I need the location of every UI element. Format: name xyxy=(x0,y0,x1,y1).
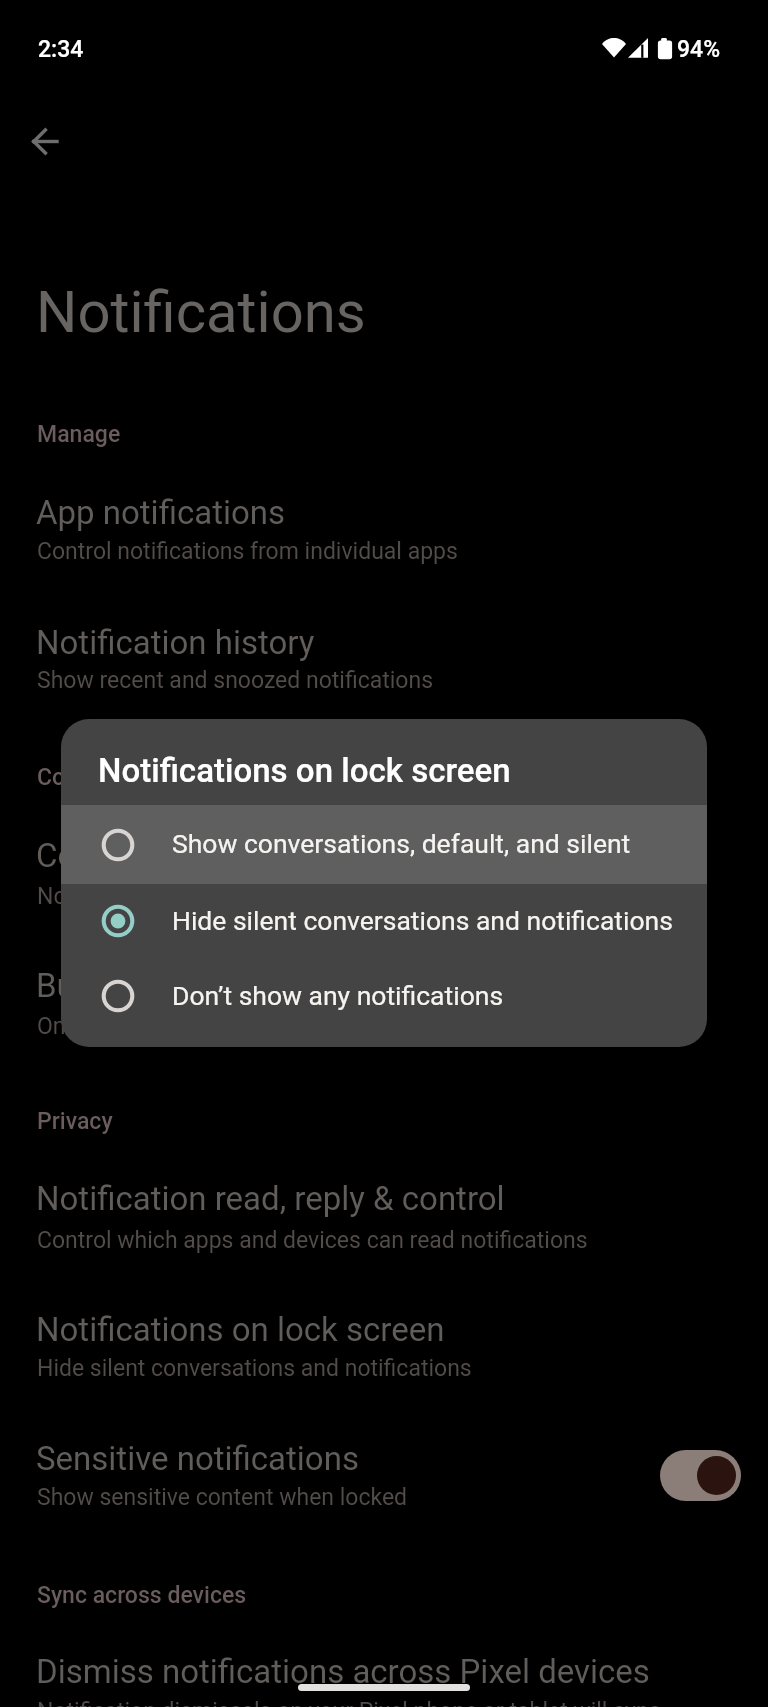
staticText: Conversation settings xyxy=(36,836,356,875)
staticText: Sensitive notifications xyxy=(36,1439,359,1478)
staticText: Dismiss notifications across Pixel devic… xyxy=(36,1652,650,1691)
staticText: Control notifications from individual ap… xyxy=(37,538,458,565)
button[interactable]: Hide silent conversations and notificati… xyxy=(61,884,707,958)
button[interactable]: Sensitive notifications xyxy=(660,1450,741,1501)
staticText: Sync across devices xyxy=(37,1582,247,1609)
staticText: Show sensitive content when locked xyxy=(37,1484,408,1511)
staticText: Privacy xyxy=(37,1108,113,1135)
other: Mobile signal xyxy=(628,38,648,58)
staticText: Hide silent conversations and notificati… xyxy=(172,905,673,936)
other: Wi-Fi xyxy=(602,38,626,58)
button[interactable]: App notifications xyxy=(0,481,768,564)
staticText: App notifications xyxy=(36,493,286,532)
button[interactable]: Notifications on lock screen xyxy=(0,1298,768,1381)
other: Battery xyxy=(657,38,673,60)
button[interactable]: Notification read, reply & control xyxy=(0,1167,768,1252)
button[interactable]: Don’t show any notifications xyxy=(61,958,707,1034)
staticText: Bubbles xyxy=(36,966,155,1005)
staticText: No priority conversations xyxy=(37,883,294,910)
staticText: Notification history xyxy=(36,623,315,662)
staticText: Notification dismissals on your Pixel ph… xyxy=(37,1698,661,1707)
staticText: Notification read, reply & control xyxy=(36,1179,505,1218)
button[interactable]: Show conversations, default, and silent xyxy=(61,805,707,884)
staticText: 94% xyxy=(677,36,721,63)
staticText: Manage xyxy=(37,421,121,448)
button[interactable]: Conversation settings xyxy=(0,824,768,908)
staticText: Notifications on lock screen xyxy=(36,1310,445,1349)
button[interactable]: Back xyxy=(17,113,73,169)
staticText: Control which apps and devices can read … xyxy=(37,1227,588,1254)
staticText: Show recent and snoozed notifications xyxy=(37,667,434,694)
button[interactable]: Notification history xyxy=(0,610,768,692)
button[interactable]: Dismiss notifications across Pixel devic… xyxy=(0,1640,768,1707)
staticText: On xyxy=(37,1013,66,1040)
staticText: Hide silent conversations and notificati… xyxy=(37,1355,472,1382)
staticText: Notifications on lock screen xyxy=(98,751,511,790)
staticText: 2:34 xyxy=(38,36,84,63)
staticText: Conversations xyxy=(37,764,186,791)
staticText: Show conversations, default, and silent xyxy=(172,828,631,859)
staticText: Notifications xyxy=(36,278,366,346)
staticText: Don’t show any notifications xyxy=(172,980,504,1011)
button[interactable]: Sensitive notifications xyxy=(0,1427,768,1509)
button[interactable]: Bubbles xyxy=(0,954,768,1038)
